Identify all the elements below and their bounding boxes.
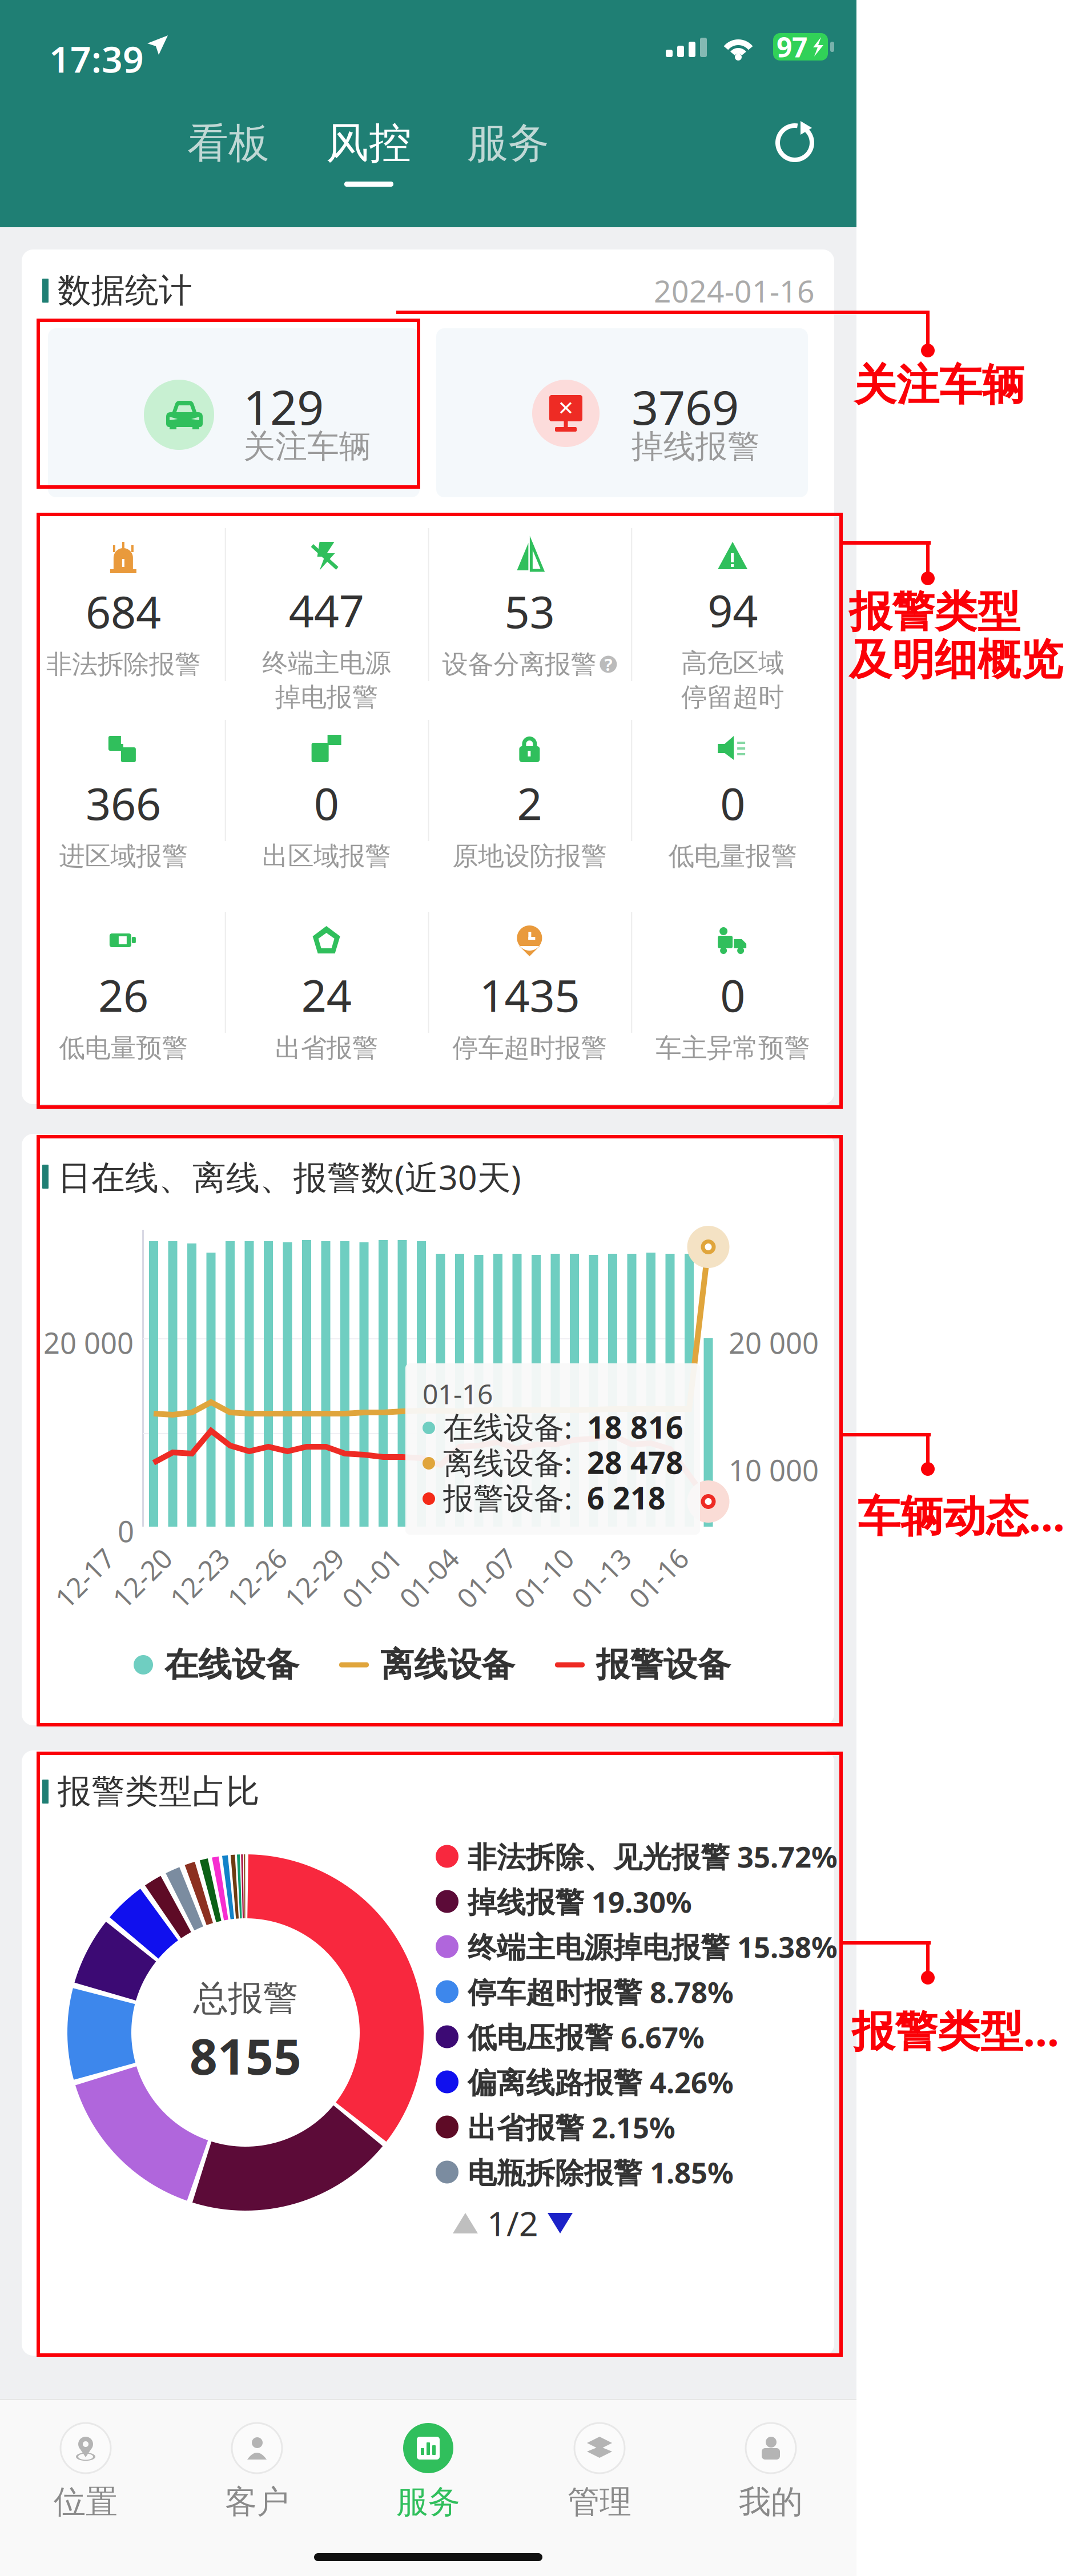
staticText: 低电量预警 [59,1032,188,1064]
button[interactable]: 53 [428,520,631,712]
button[interactable]: 447 [225,520,428,712]
staticText: 出省报警 2.15% [468,2108,675,2146]
staticText: 掉线报警 [631,427,759,466]
button[interactable]: 684 [22,520,225,712]
staticText: 24 [301,965,351,1024]
staticText: 在线设备 [164,1644,299,1685]
staticText: 53 [504,582,555,640]
staticText: 客户 [225,2482,289,2522]
staticText: 进区域报警 [59,840,188,872]
staticText: 01-01 [336,1560,407,1596]
button[interactable]: 129 [48,328,420,497]
staticText: 0 [720,965,745,1024]
staticText: 01-13 [566,1560,636,1596]
staticText: 1/2 [487,2201,538,2245]
staticText: ✕ [558,397,574,419]
staticText: 总报警 [193,1977,298,2020]
staticText: 2 [517,774,542,832]
staticText: 2024-01-16 [654,270,815,311]
staticText: 18 816 [587,1407,683,1447]
staticText: 看板 [187,118,269,169]
staticText: 10 000 [729,1451,819,1489]
button[interactable]: 刷新 [775,123,814,162]
staticText: 掉线报警 19.30% [468,1882,692,1921]
button[interactable]: 0 [225,712,428,904]
staticText: 服务 [396,2482,460,2522]
button[interactable]: 风控 [312,112,426,203]
staticText: 出省报警 [275,1032,378,1064]
staticText: 关注车辆 [243,427,371,466]
staticText: 出区域报警 [262,840,391,872]
button[interactable]: 我的 [685,2423,856,2522]
staticText: 01-16 [423,1375,493,1412]
staticText: 01-16 [623,1560,693,1596]
staticText: 偏离线路报警 4.26% [468,2063,734,2101]
staticText: 停车超时报警 8.78% [468,1972,734,2011]
staticText: 设备分离报警 [442,648,596,680]
button[interactable]: 24 [225,904,428,1096]
staticText: 366 [86,774,161,832]
button[interactable]: 服务 [451,112,565,175]
staticText: 非法拆除报警 [46,648,200,680]
staticText: 01-07 [451,1560,521,1596]
button[interactable]: 94 [631,520,834,712]
staticText: 风控 [326,117,412,169]
staticText: 离线设备: [443,1442,580,1482]
staticText: 28 478 [587,1442,683,1482]
staticText: ? [604,653,612,675]
staticText: 离线设备 [380,1644,515,1685]
staticText: 低电压报警 6.67% [468,2018,705,2056]
button[interactable]: 客户 [171,2423,343,2522]
staticText: 车辆动态统计 [858,1486,1078,1543]
staticText: 原地设防报警 [452,840,607,872]
button[interactable]: 366 [22,712,225,904]
staticText: 97 [777,29,807,65]
staticText: 129 [243,375,324,438]
staticText: 0 [720,774,745,832]
button[interactable]: ✕ [436,328,808,497]
staticText: 报警设备: [443,1477,580,1518]
staticText: 车主异常预警 [656,1032,810,1064]
staticText: 684 [86,582,161,640]
staticText: 停车超时报警 [452,1032,607,1064]
staticText: 关注车辆 [854,359,1025,412]
staticText: 26 [98,965,148,1024]
staticText: 报警类型 [849,586,1020,638]
staticText: 12-23 [164,1560,234,1596]
staticText: 94 [707,581,758,639]
button[interactable]: 2 [428,712,631,904]
staticText: 位置 [54,2482,118,2522]
button[interactable]: 0 [631,712,834,904]
staticText: 停留超时 [681,681,784,713]
staticText: 报警设备 [596,1644,731,1685]
staticText: 低电量报警 [668,840,797,872]
staticText: 01-10 [508,1560,579,1596]
staticText: 我的 [739,2482,803,2522]
button[interactable]: 看板 [171,112,285,175]
staticText: 12-20 [107,1560,177,1596]
button[interactable]: 1435 [428,904,631,1096]
button[interactable]: 服务 [343,2423,514,2522]
staticText: 数据统计 [58,270,192,311]
staticText: 12-26 [222,1560,292,1596]
staticText: 非法拆除、见光报警 35.72% [468,1837,838,1876]
button[interactable]: 管理 [514,2423,685,2522]
staticText: 日在线、离线、报警数(近30天) [58,1154,521,1199]
staticText: 终端主电源 [262,647,391,679]
staticText: 掉电报警 [275,681,378,713]
button[interactable]: 26 [22,904,225,1096]
staticText: 12-29 [279,1560,349,1596]
staticText: 1435 [479,965,580,1024]
staticText: 20 000 [43,1323,134,1362]
button[interactable]: 0 [631,904,834,1096]
button[interactable]: 位置 [0,2423,171,2522]
staticText: 电瓶拆除报警 1.85% [468,2153,734,2191]
staticText: 0 [118,1512,134,1550]
staticText: 终端主电源掉电报警 15.38% [468,1927,838,1966]
staticText: 01-04 [394,1560,464,1596]
staticText: 0 [314,774,339,832]
staticText: 20 000 [729,1323,819,1362]
staticText: 12-17 [49,1560,120,1596]
staticText: 报警类型占比 [852,2001,1078,2058]
staticText: 17:39 [49,34,144,83]
